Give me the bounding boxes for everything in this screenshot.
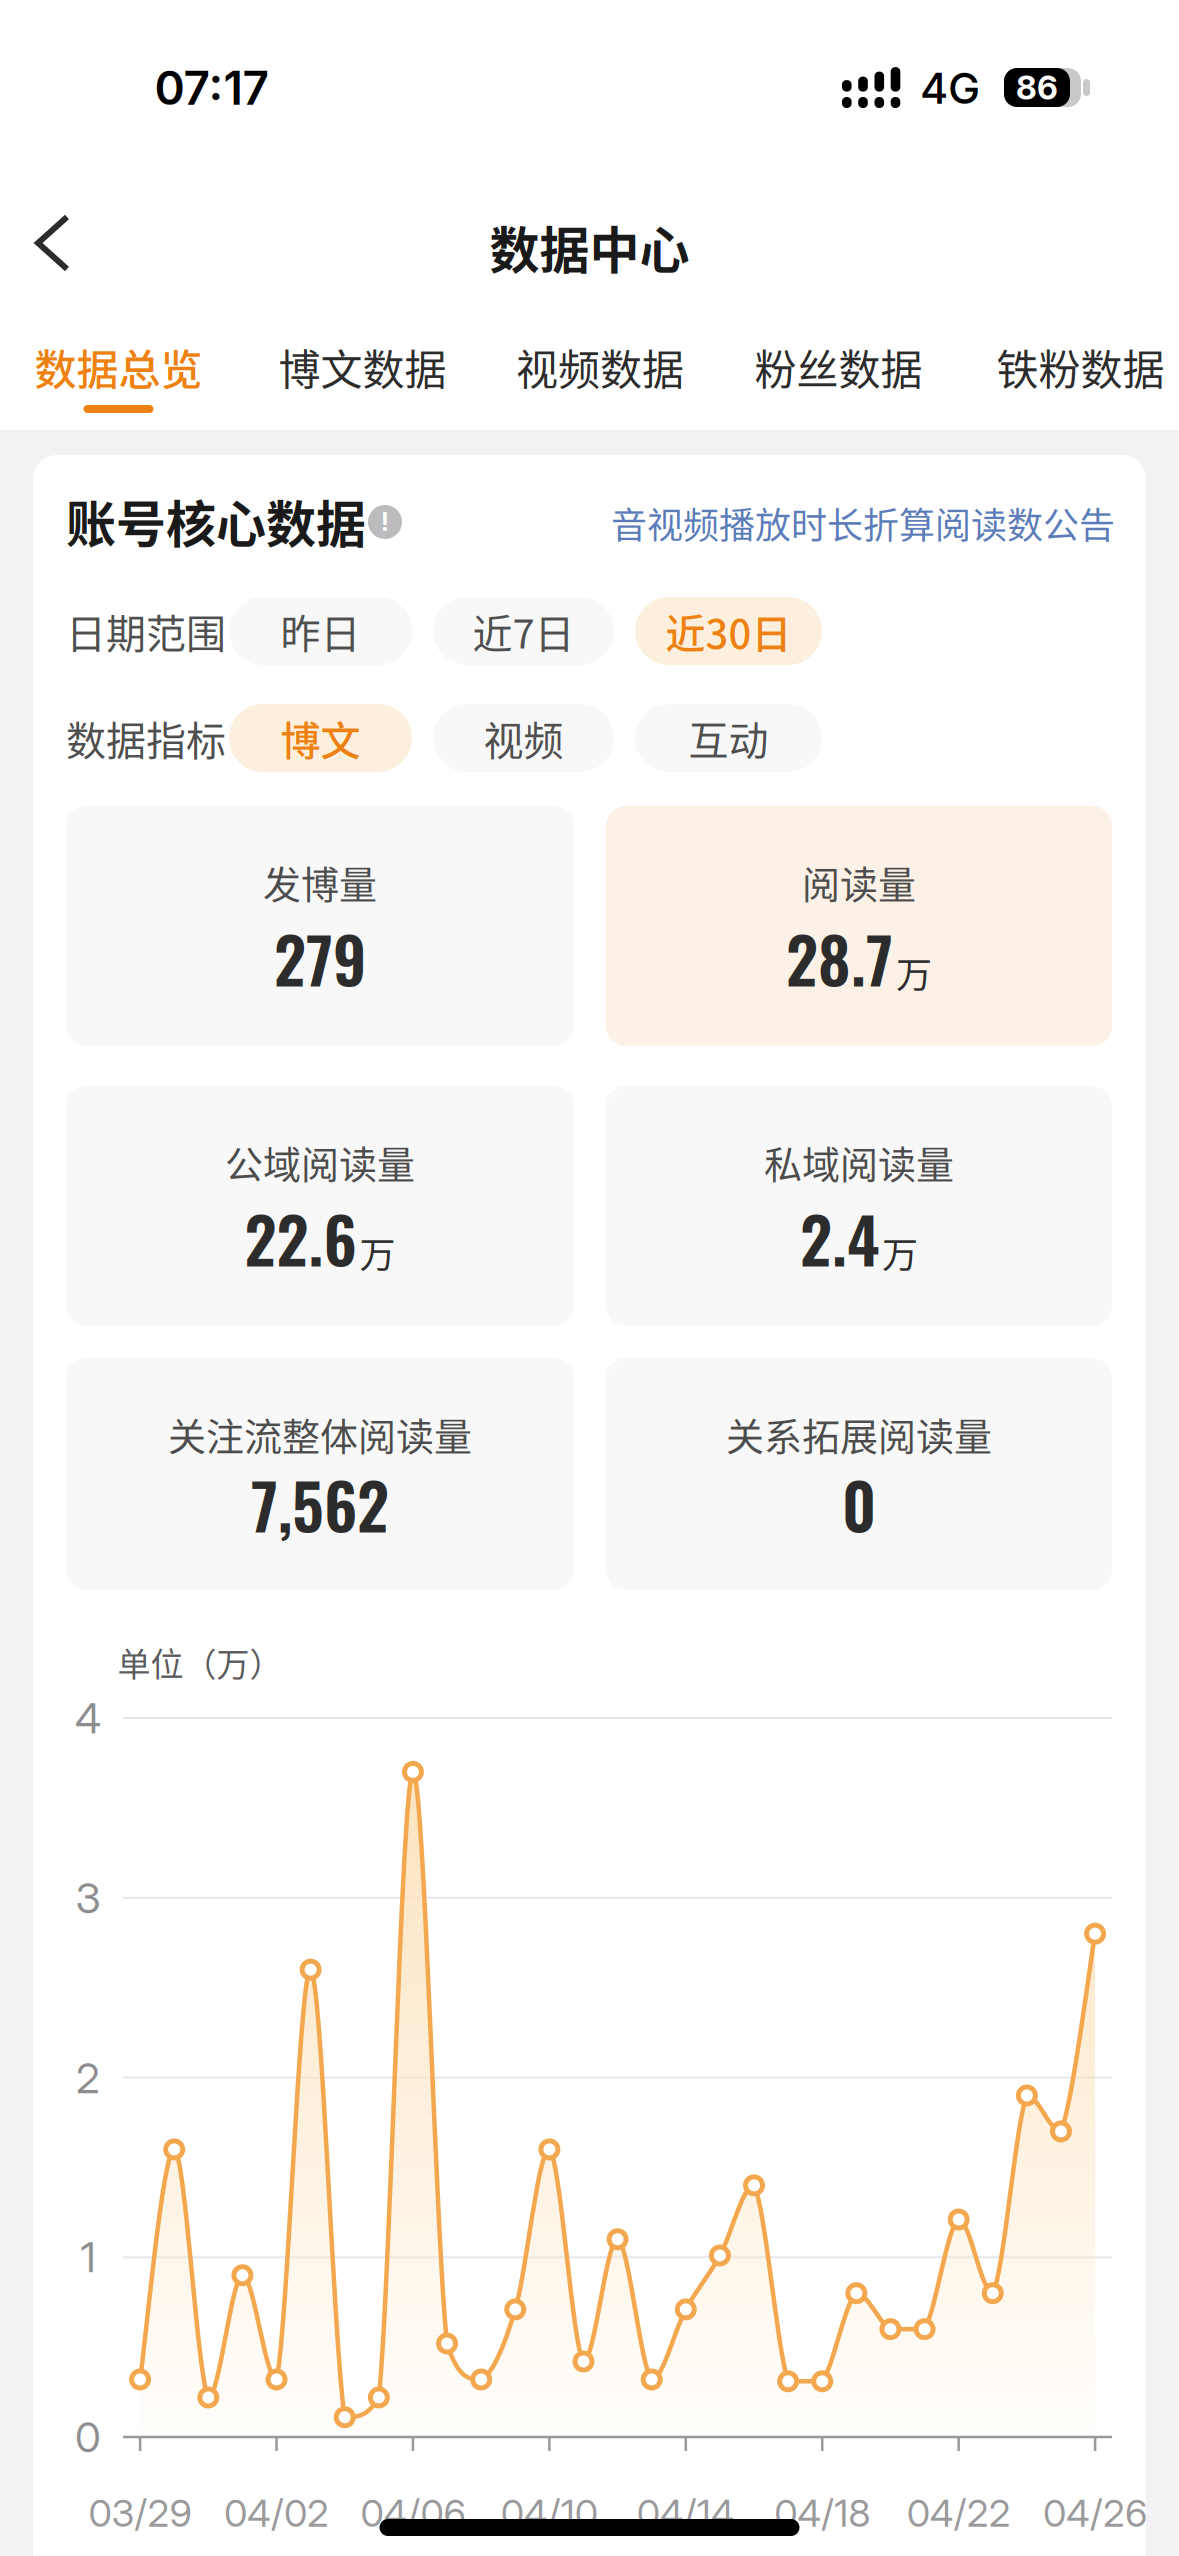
staticText: 28.7 (786, 911, 893, 1005)
staticText: 发博量 (263, 854, 377, 909)
staticText: 2.4 (800, 1191, 879, 1285)
staticText: 互动 (688, 709, 768, 767)
staticText: 视频 (483, 709, 563, 767)
staticText: 04/22 (907, 2490, 1011, 2536)
staticText: 近30日 (665, 602, 791, 660)
staticText: 账号核心数据 (66, 485, 366, 557)
staticText: 万 (882, 1227, 918, 1279)
staticText: 07:17 (154, 60, 269, 116)
staticText: 22.6 (244, 1191, 356, 1285)
staticText: 04/26 (1043, 2490, 1147, 2536)
button[interactable]: 关系拓展阅读量 (606, 1358, 1112, 1590)
button[interactable]: 视频 (433, 704, 614, 772)
staticText: 视频数据 (516, 337, 684, 397)
staticText: 86 (1016, 67, 1058, 107)
staticText: 数据中心 (489, 211, 689, 283)
staticText: 公域阅读量 (225, 1134, 415, 1189)
staticText: 04/14 (637, 2490, 735, 2536)
button[interactable]: 音视频播放时长折算阅读数公告 (611, 497, 1115, 549)
staticText: ! (381, 507, 389, 537)
button[interactable]: Back (38, 217, 67, 269)
staticText: 万 (896, 947, 932, 999)
staticText: 私域阅读量 (764, 1134, 954, 1189)
staticText: 279 (274, 911, 366, 1005)
button[interactable]: 近30日 (635, 597, 822, 665)
staticText: 2 (76, 2053, 100, 2103)
staticText: 博文数据 (278, 337, 446, 397)
button[interactable]: 昨日 (229, 597, 412, 665)
button[interactable]: 关注流整体阅读量 (66, 1358, 574, 1590)
staticText: 数据总览 (34, 337, 202, 397)
staticText: 04/10 (501, 2490, 598, 2536)
button[interactable]: 发博量 (66, 806, 574, 1046)
button[interactable]: 粉丝数据 (754, 337, 922, 397)
staticText: 03/29 (88, 2490, 191, 2536)
button[interactable]: 阅读量 (606, 806, 1112, 1046)
button[interactable]: 铁粉数据 (996, 337, 1164, 397)
staticText: 1 (80, 2232, 95, 2282)
staticText: 3 (75, 1873, 100, 1923)
button[interactable]: 互动 (635, 704, 822, 772)
staticText: 0 (75, 2412, 101, 2462)
staticText: 关系拓展阅读量 (726, 1406, 992, 1461)
staticText: 博文 (280, 709, 360, 767)
staticText: 日期范围 (66, 602, 226, 660)
staticText: 音视频播放时长折算阅读数公告 (611, 497, 1115, 549)
staticText: 04/06 (360, 2490, 465, 2536)
button[interactable]: 数据总览 (34, 337, 202, 397)
staticText: 04/18 (774, 2490, 870, 2536)
staticText: 4G (920, 62, 980, 114)
button[interactable]: 近7日 (433, 597, 614, 665)
button[interactable]: 公域阅读量 (66, 1086, 574, 1326)
staticText: 阅读量 (802, 854, 916, 909)
staticText: 4 (75, 1693, 101, 1743)
staticText: 昨日 (280, 602, 360, 660)
button[interactable]: 视频数据 (516, 337, 684, 397)
staticText: 单位（万） (117, 1638, 282, 1686)
button[interactable]: 博文数据 (278, 337, 446, 397)
staticText: 04/02 (224, 2490, 329, 2536)
staticText: 7,562 (251, 1457, 389, 1551)
button[interactable]: 说明 (368, 505, 402, 539)
staticText: 粉丝数据 (754, 337, 922, 397)
staticText: 0 (842, 1457, 876, 1551)
button[interactable]: 博文 (229, 704, 412, 772)
staticText: 万 (359, 1227, 395, 1279)
staticText: 铁粉数据 (996, 337, 1164, 397)
staticText: 近7日 (472, 602, 574, 660)
staticText: 关注流整体阅读量 (168, 1406, 472, 1461)
button[interactable]: 私域阅读量 (606, 1086, 1112, 1326)
staticText: 数据指标 (66, 709, 226, 767)
